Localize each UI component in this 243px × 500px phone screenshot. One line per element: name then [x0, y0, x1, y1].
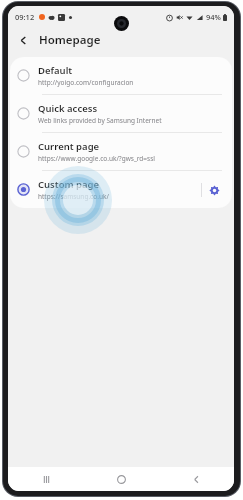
button[interactable]: Back — [13, 30, 33, 50]
button[interactable]: Current page — [10, 133, 232, 170]
staticText: http://yoigo.com/configuracion — [38, 78, 134, 87]
staticText: Default — [38, 64, 73, 77]
button[interactable]: Settings — [202, 178, 226, 202]
staticText: 94% — [206, 12, 221, 22]
button[interactable]: Default — [10, 57, 232, 94]
staticText: https://www.google.co.uk/?gws_rd=ssl — [38, 154, 155, 163]
staticText: Quick access — [38, 102, 98, 115]
button[interactable]: Back — [159, 467, 234, 491]
button[interactable]: Home — [84, 467, 159, 491]
staticText: https://samsung.co.uk/ — [38, 192, 109, 201]
staticText: Current page — [38, 140, 100, 153]
button[interactable]: Recent apps — [8, 467, 84, 491]
staticText: Web links provided by Samsung Internet — [38, 116, 162, 125]
staticText: Custom page — [38, 178, 100, 191]
button[interactable]: Custom page — [10, 171, 232, 208]
staticText: Homepage — [39, 32, 101, 48]
button[interactable]: Quick access — [10, 95, 232, 132]
staticText: 09:12 — [15, 12, 35, 22]
